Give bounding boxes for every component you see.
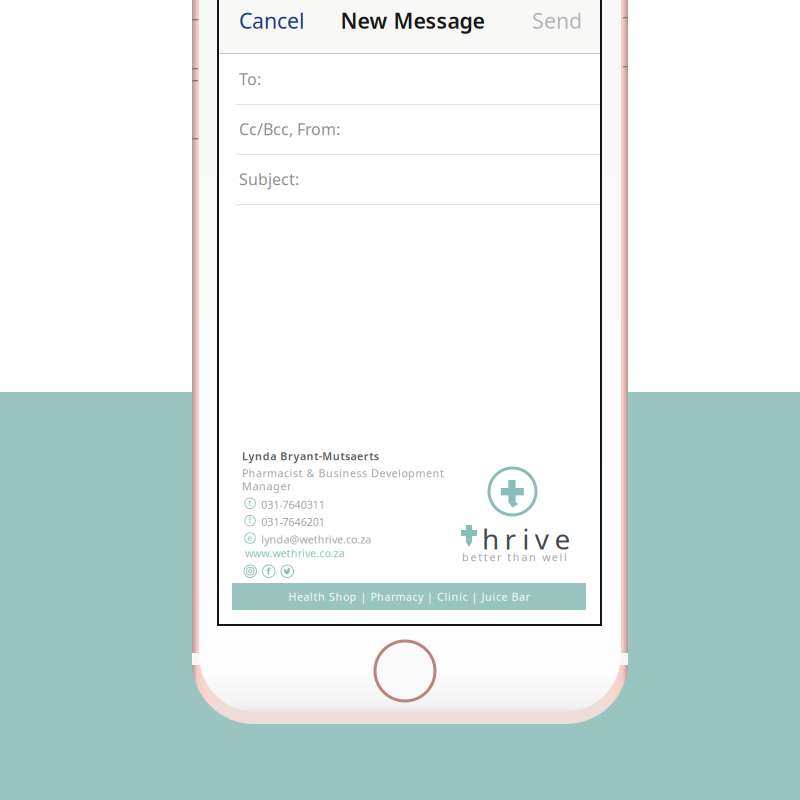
button[interactable]: Send [522,0,598,41]
staticText: Subject: [239,168,299,190]
staticText: Cc/Bcc, From: [239,118,340,140]
staticText: e [248,533,253,543]
staticText: Lynda Bryant-Mutsaerts [242,449,379,463]
staticText: hrive [482,520,570,557]
staticText: Pharmacist & Business Development [242,466,444,480]
staticText: lynda@wethrive.co.za [261,532,371,546]
staticText: Manager [242,479,291,493]
staticText: Send [532,6,582,35]
staticText: To: [239,68,261,90]
staticText: 031-7640311 [261,497,325,512]
staticText: better than well [462,550,567,564]
staticText: t [249,498,252,508]
button[interactable]: Twitter [281,565,293,577]
staticText: f [249,515,252,526]
staticText: Cancel [239,6,305,35]
staticText: Health Shop | Pharmacy | Clinic | Juice … [288,589,529,604]
staticText: New Message [340,6,484,35]
button[interactable]: Cancel [219,0,319,41]
button[interactable]: Instagram [244,565,256,577]
staticText: www.wethrive.co.za [245,546,345,560]
staticText: 031-7646201 [261,515,325,529]
button[interactable]: Facebook [262,565,275,577]
